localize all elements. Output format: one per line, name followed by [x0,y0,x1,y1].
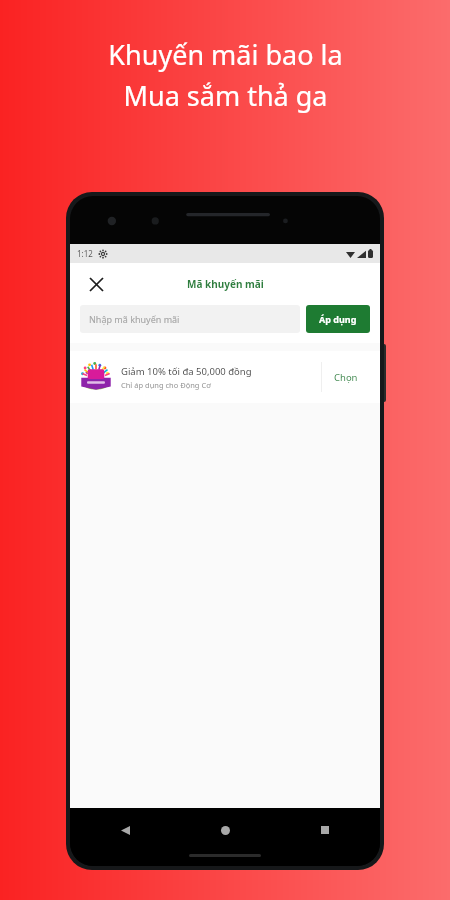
staticText: Mã khuyến mãi [187,277,264,291]
staticText: Giảm 10% tối đa 50,000 đồng [121,365,252,378]
button[interactable]: Back [112,817,138,843]
staticText: Mua sắm thả ga [123,77,328,114]
button[interactable]: Nhập mã khuyến mãi [80,305,300,333]
button[interactable]: Home [212,817,238,843]
button[interactable]: Giảm 10% tối đa 50,000 đồng [70,351,380,403]
button[interactable]: Áp dụng [306,305,370,333]
staticText: Chọn [334,371,358,384]
button[interactable]: Close [82,270,110,298]
button[interactable]: Recent apps [312,817,338,843]
staticText: Áp dụng [319,313,357,325]
staticText: Khuyến mãi bao la [108,36,343,73]
staticText: 1:12 [77,248,93,259]
staticText: Nhập mã khuyến mãi [89,313,180,325]
staticText: Chỉ áp dụng cho Động Cơ [121,380,211,390]
button[interactable]: Chọn [322,360,370,394]
